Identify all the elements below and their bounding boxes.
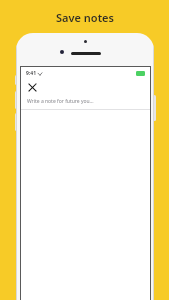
- staticText: Write a note for future you...: [27, 98, 94, 105]
- button[interactable]: Write a note for future you...: [21, 96, 150, 300]
- staticText: Save notes: [56, 10, 114, 25]
- staticText: 9:41: [26, 70, 36, 77]
- button[interactable]: Close: [25, 80, 39, 94]
